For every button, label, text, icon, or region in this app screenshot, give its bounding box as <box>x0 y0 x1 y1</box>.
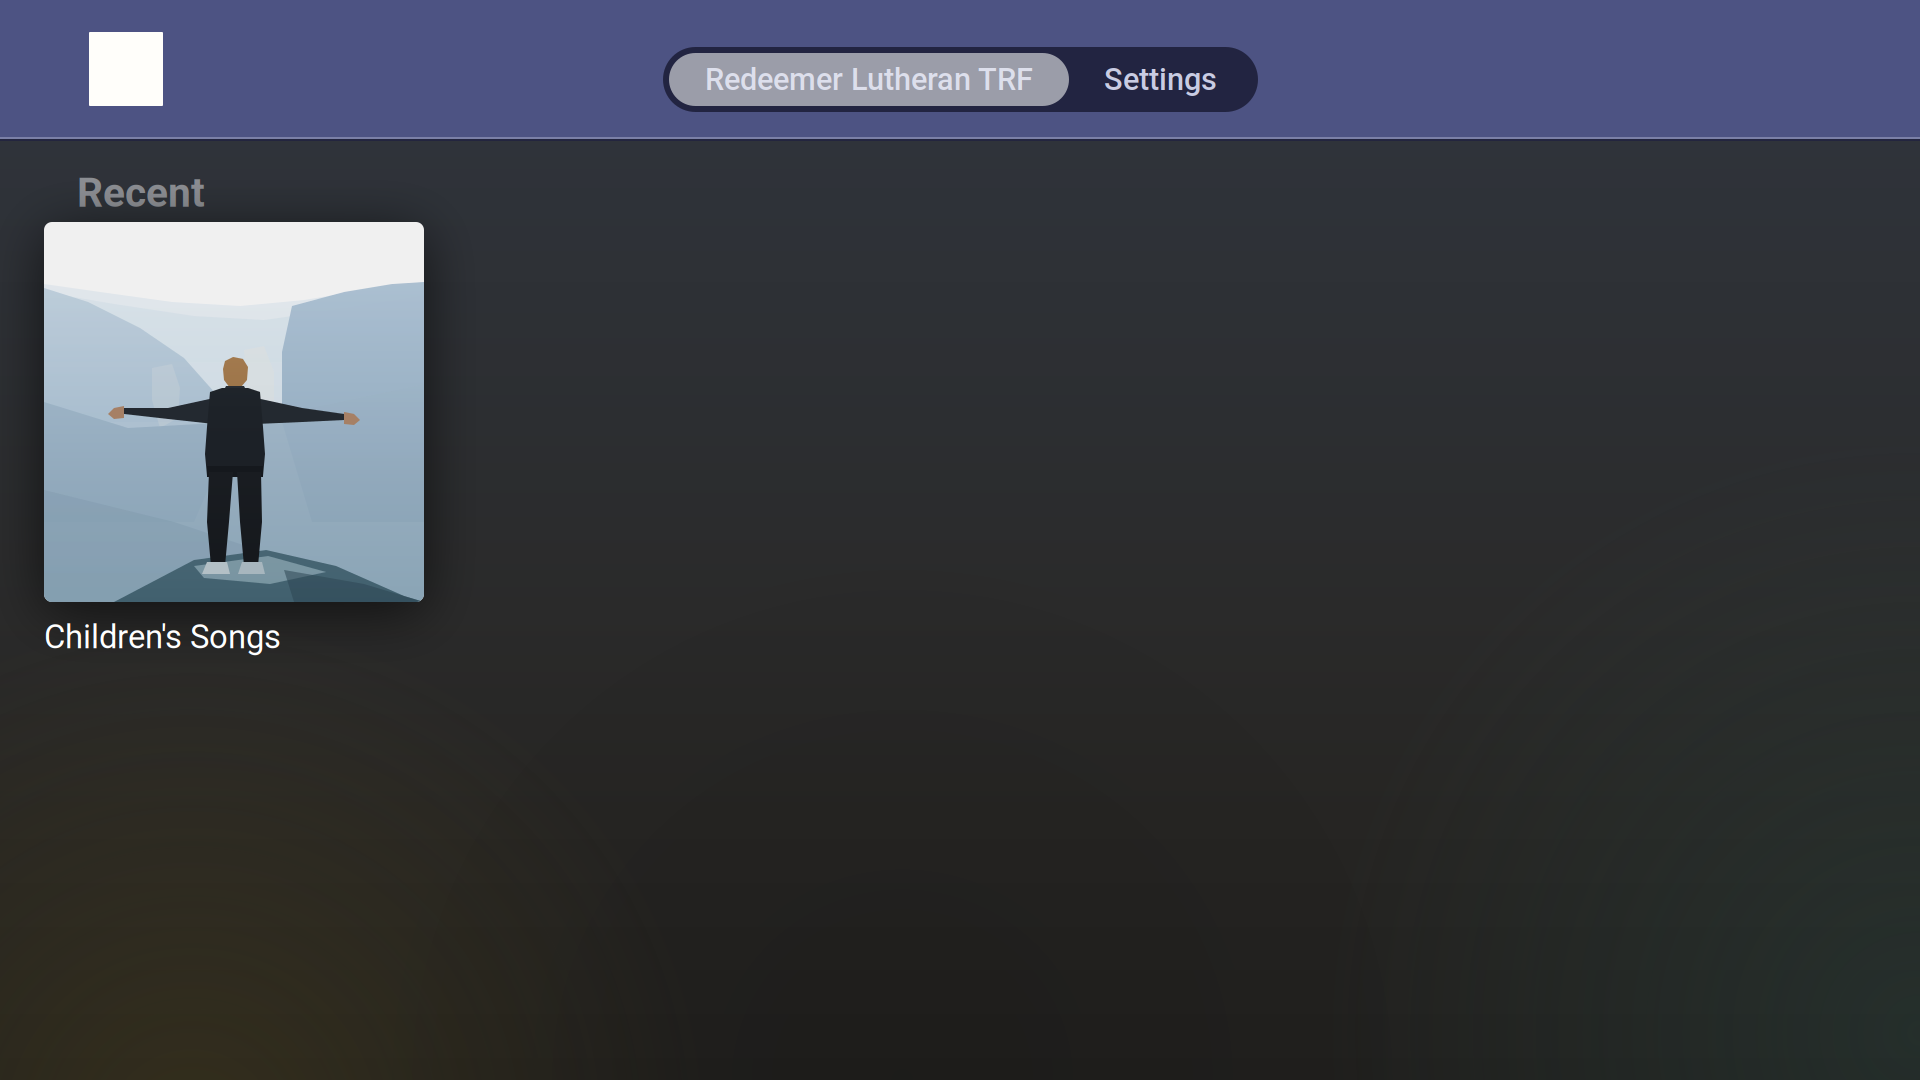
button[interactable]: Settings <box>1069 53 1252 106</box>
staticText: Settings <box>1104 61 1217 97</box>
staticText: Redeemer Lutheran TRF <box>705 61 1033 97</box>
button[interactable]: Children's Songs <box>44 222 424 666</box>
button[interactable]: Redeemer Lutheran TRF <box>669 53 1069 106</box>
staticText: Recent <box>77 169 205 217</box>
staticText: Children's Songs <box>44 618 281 656</box>
